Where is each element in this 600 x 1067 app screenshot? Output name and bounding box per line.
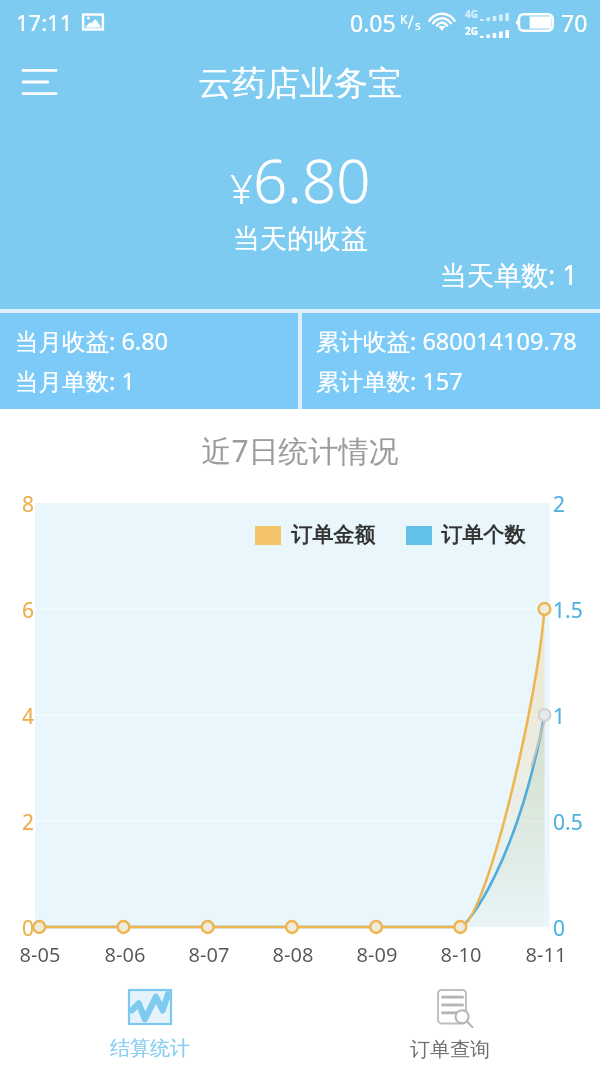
staticText: ¥ bbox=[230, 161, 253, 215]
staticText: 4 bbox=[0, 702, 34, 731]
staticText: 订单金额 bbox=[291, 522, 375, 548]
staticText: 订单查询 bbox=[410, 1037, 490, 1062]
staticText: 8-07 bbox=[169, 941, 249, 968]
staticText: 当月单数: 1 bbox=[15, 365, 135, 397]
staticText: 8-10 bbox=[421, 941, 501, 968]
staticText: 8-11 bbox=[506, 941, 586, 968]
staticText: 0.05 bbox=[350, 7, 396, 38]
staticText: 1.5 bbox=[553, 596, 583, 625]
staticText: 近7日统计情况 bbox=[0, 430, 600, 471]
staticText: 8-08 bbox=[253, 941, 333, 968]
staticText: 8-05 bbox=[0, 941, 80, 968]
staticText: 8-09 bbox=[337, 941, 417, 968]
staticText: 订单个数 bbox=[441, 522, 525, 548]
staticText: 0 bbox=[553, 914, 566, 943]
staticText: 70 bbox=[561, 7, 588, 38]
button[interactable]: 结算统计 bbox=[0, 967, 300, 1067]
staticText: 8-06 bbox=[85, 941, 165, 968]
staticText: 2 bbox=[553, 490, 566, 519]
button[interactable]: Menu bbox=[0, 44, 77, 110]
staticText: 8 bbox=[0, 490, 34, 519]
staticText: 当月收益: 6.80 bbox=[15, 325, 169, 357]
staticText: 累计收益: 680014109.78 bbox=[316, 325, 577, 357]
staticText: 累计单数: 157 bbox=[316, 365, 463, 397]
staticText: 当天的收益 bbox=[233, 222, 368, 256]
staticText: 当天单数: 1 bbox=[440, 256, 578, 293]
staticText: 17:11 bbox=[16, 7, 73, 37]
staticText: 2 bbox=[0, 808, 34, 837]
staticText: 6.80 bbox=[253, 139, 371, 221]
staticText: K bbox=[400, 11, 408, 27]
staticText: s bbox=[415, 17, 421, 33]
button[interactable]: 订单查询 bbox=[300, 967, 600, 1067]
staticText: 0.5 bbox=[553, 808, 583, 837]
staticText: 0 bbox=[0, 914, 34, 943]
staticText: 1 bbox=[553, 702, 566, 731]
staticText: 2G bbox=[465, 24, 478, 38]
staticText: 结算统计 bbox=[110, 1036, 190, 1061]
staticText: 云药店业务宝 bbox=[198, 62, 402, 105]
staticText: 6 bbox=[0, 596, 34, 625]
staticText: 4G bbox=[465, 7, 478, 21]
